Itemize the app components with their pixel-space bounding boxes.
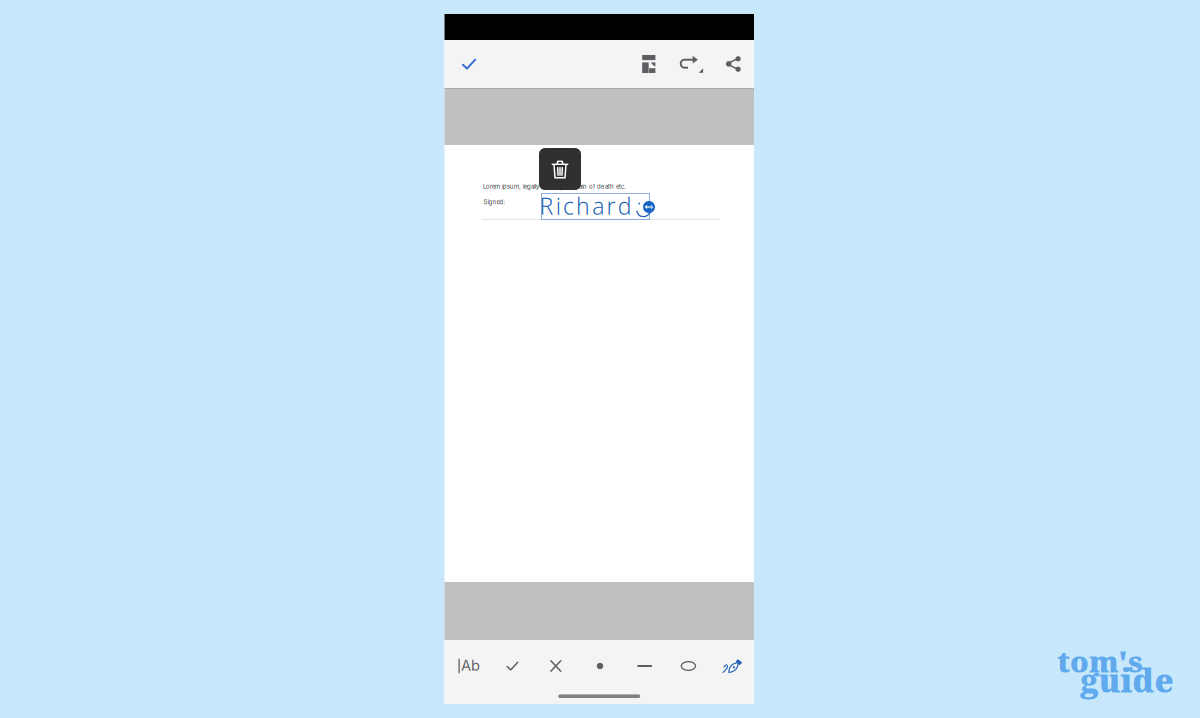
button[interactable]: Dot xyxy=(580,641,620,691)
button[interactable]: Oval xyxy=(668,641,708,691)
button[interactable]: Redo xyxy=(673,40,709,88)
button[interactable]: Delete signature xyxy=(539,148,581,190)
staticText: guide xyxy=(1080,658,1173,702)
button[interactable]: Line xyxy=(625,641,665,691)
button[interactable]: Share xyxy=(715,40,751,88)
staticText: tom's xyxy=(1057,641,1143,681)
staticText: Richard xyxy=(539,190,640,221)
button[interactable]: Checkmark xyxy=(492,641,532,691)
button[interactable]: Signature xyxy=(713,641,753,691)
staticText: Signed: xyxy=(483,198,505,206)
button[interactable]: Done xyxy=(449,40,489,88)
button[interactable]: Cross xyxy=(536,641,576,691)
staticText: Ab xyxy=(461,656,480,674)
button[interactable]: Resize signature xyxy=(643,201,655,213)
button[interactable]: Text xyxy=(449,641,489,691)
staticText: Lorem ipsum, legally binding on pain of … xyxy=(483,183,626,190)
button[interactable]: Page layout xyxy=(631,40,667,88)
